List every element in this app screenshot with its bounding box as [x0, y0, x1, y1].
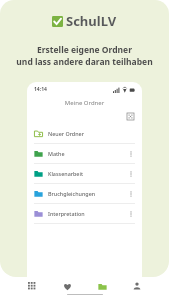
- button[interactable]: Mathe: [27, 144, 142, 163]
- button[interactable]: Mehr Optionen: [127, 150, 135, 158]
- button[interactable]: Profil: [127, 278, 147, 294]
- staticText: Neuer Ordner: [48, 130, 84, 137]
- button[interactable]: Mehr Optionen: [127, 210, 135, 218]
- button[interactable]: Interpretation: [27, 204, 142, 223]
- staticText: Mathe: [48, 150, 65, 157]
- staticText: Klassenarbeit: [48, 170, 83, 177]
- staticText: Erstelle eigene Ordner und lass andere d…: [8, 44, 161, 68]
- button[interactable]: Bruchgleichungen: [27, 184, 142, 203]
- staticText: 14:14: [34, 86, 47, 93]
- staticText: Meine Ordner: [27, 99, 142, 107]
- button[interactable]: Mehr Optionen: [127, 190, 135, 198]
- button[interactable]: Klassenarbeit: [27, 164, 142, 183]
- button[interactable]: Ansicht wechseln: [126, 112, 135, 121]
- staticText: Bruchgleichungen: [48, 190, 96, 197]
- button[interactable]: Mehr Optionen: [127, 170, 135, 178]
- staticText: SchulLV: [66, 12, 117, 30]
- staticText: Interpretation: [48, 210, 85, 217]
- button[interactable]: Übungen: [22, 278, 42, 294]
- button[interactable]: Favoriten: [57, 278, 77, 294]
- button[interactable]: Neuer Ordner: [27, 124, 142, 143]
- button[interactable]: Ordner: [92, 278, 112, 294]
